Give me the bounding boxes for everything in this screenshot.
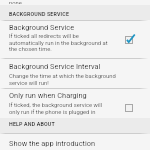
staticText: HELP AND ABOUT [9, 121, 55, 127]
staticText: If ticked all redirects will be automati… [9, 33, 112, 52]
button[interactable]: Show the app introduction [0, 134, 150, 148]
staticText: If ticked, the background service will o… [9, 102, 112, 115]
button[interactable]: Only run when Charging [0, 89, 150, 115]
button[interactable]: Only run when Charging [125, 99, 143, 117]
staticText: Background Service [9, 23, 75, 32]
staticText: Background Service Interval [9, 62, 101, 71]
button[interactable]: Background Service [0, 21, 150, 52]
staticText: Show the app introduction [9, 139, 96, 148]
button[interactable]: Background Service Interval [0, 59, 150, 86]
staticText: Only run when Charging [9, 91, 87, 100]
button[interactable]: Background Service [125, 31, 143, 49]
staticText: Change the time at which the background … [9, 73, 117, 86]
staticText: none [9, 0, 22, 4]
staticText: BACKGROUND SERVICE [9, 11, 70, 17]
